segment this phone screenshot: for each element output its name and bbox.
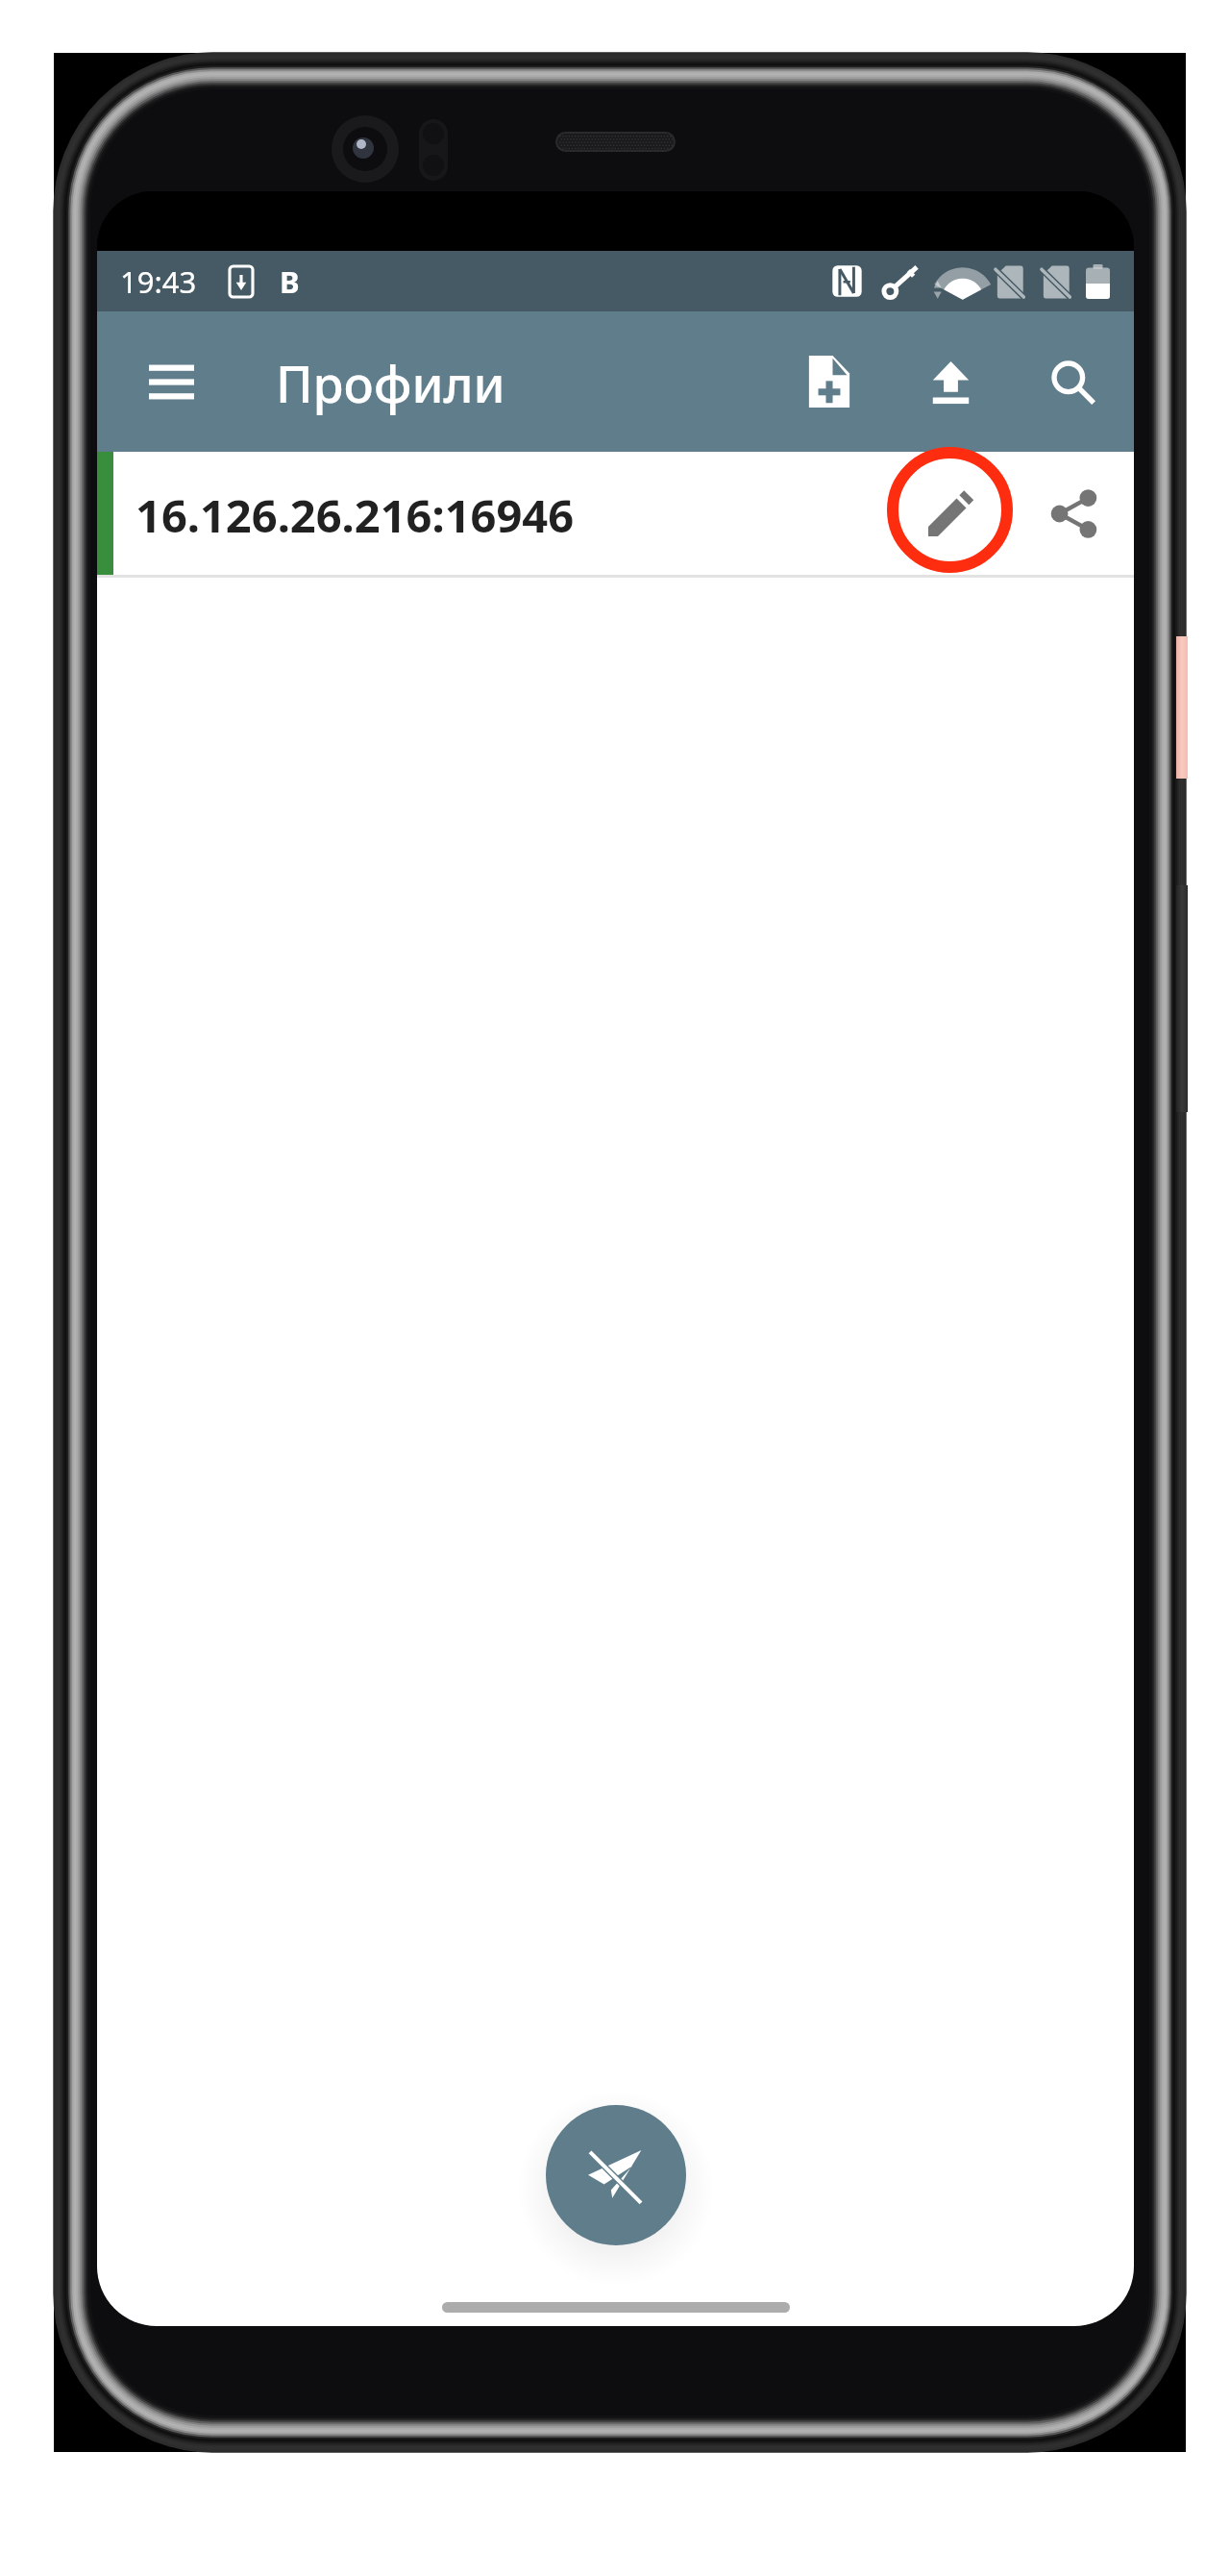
button[interactable]: New profile xyxy=(768,311,890,452)
button[interactable]: Edit profile xyxy=(898,459,1005,567)
button[interactable]: Upload xyxy=(890,311,1012,452)
button[interactable]: Connect xyxy=(546,2105,686,2245)
button[interactable]: Open navigation menu xyxy=(123,311,219,452)
button[interactable]: Search xyxy=(1012,311,1134,452)
staticText: B xyxy=(280,261,300,302)
staticText: 19:43 xyxy=(120,261,197,302)
staticText: 16.126.26.216:16946 xyxy=(135,484,575,546)
button[interactable]: 16.126.26.216:16946 xyxy=(97,452,1134,578)
button[interactable]: Share profile xyxy=(1020,459,1127,567)
staticText: Профили xyxy=(276,349,505,417)
